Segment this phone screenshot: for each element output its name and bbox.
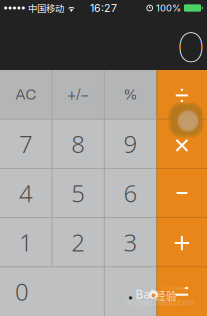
staticText: Bai xyxy=(135,287,153,302)
staticText: 1 xyxy=(19,226,33,258)
staticText: 6 xyxy=(124,177,138,209)
staticText: 4 xyxy=(19,177,33,209)
staticText: 0 xyxy=(177,21,205,73)
button[interactable]: Add xyxy=(157,218,207,267)
button[interactable]: Nine xyxy=(104,119,157,168)
staticText: 100% xyxy=(156,2,181,14)
button[interactable]: Eight xyxy=(52,119,104,168)
button[interactable]: Four xyxy=(0,168,52,218)
staticText: % xyxy=(124,87,138,103)
staticText: 7 xyxy=(19,128,33,160)
button[interactable]: One xyxy=(0,218,52,267)
button[interactable]: Two xyxy=(52,218,104,267)
staticText: jingyan.baidu.com xyxy=(125,298,194,307)
button[interactable]: Three xyxy=(104,218,157,267)
button[interactable]: Decimal point xyxy=(104,267,157,316)
staticText: 中国移动 xyxy=(28,1,64,15)
button[interactable]: Divide xyxy=(157,70,207,119)
button[interactable]: Seven xyxy=(0,119,52,168)
staticText: 0 xyxy=(15,275,29,307)
button[interactable]: Plus minus xyxy=(52,70,104,119)
button[interactable]: Equals xyxy=(157,267,207,316)
button[interactable]: Subtract xyxy=(157,168,207,218)
staticText: 2 xyxy=(71,226,85,258)
staticText: 16:27 xyxy=(90,1,117,14)
button[interactable]: Percent xyxy=(104,70,157,119)
staticText: +/− xyxy=(67,87,89,103)
staticText: AC xyxy=(16,87,37,103)
staticText: 3 xyxy=(124,226,138,258)
button[interactable]: Multiply xyxy=(157,119,207,168)
button[interactable]: Zero xyxy=(0,267,104,316)
button[interactable]: Six xyxy=(104,168,157,218)
staticText: 8 xyxy=(71,128,85,160)
staticText: 5 xyxy=(71,177,85,209)
staticText: 经验 xyxy=(155,287,177,303)
button[interactable]: Five xyxy=(52,168,104,218)
button[interactable]: All clear xyxy=(0,70,52,119)
staticText: 9 xyxy=(124,128,138,160)
